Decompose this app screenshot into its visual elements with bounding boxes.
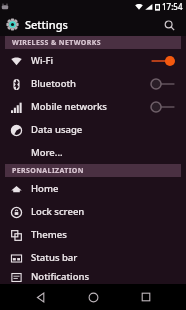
staticText: Status bar xyxy=(31,251,78,264)
staticText: Lock screen xyxy=(31,205,85,218)
button[interactable]: Status bar xyxy=(0,246,186,269)
button[interactable]: Back xyxy=(27,284,53,310)
button[interactable]: More... xyxy=(0,141,186,164)
staticText: Wi-Fi xyxy=(31,54,54,67)
button[interactable]: Toggle off xyxy=(150,77,176,91)
button[interactable]: Themes xyxy=(0,223,186,246)
button[interactable]: Home xyxy=(0,177,186,200)
staticText: Data usage xyxy=(31,123,83,136)
button[interactable]: Toggle off xyxy=(150,100,176,114)
button[interactable]: Bluetooth xyxy=(0,72,186,95)
button[interactable]: Notifications xyxy=(0,269,186,284)
staticText: Settings xyxy=(25,17,68,32)
staticText: 17:54 xyxy=(162,1,183,12)
staticText: WIRELESS & NETWORKS xyxy=(12,38,102,48)
button[interactable]: Wi-Fi xyxy=(0,49,186,72)
button[interactable]: Home xyxy=(80,284,106,310)
button[interactable]: Toggle on xyxy=(150,54,176,68)
staticText: Notifications xyxy=(31,270,90,283)
button[interactable]: Data usage xyxy=(0,118,186,141)
button[interactable]: Lock screen xyxy=(0,200,186,223)
staticText: PERSONALIZATION xyxy=(12,166,84,176)
staticText: Themes xyxy=(31,228,67,241)
button[interactable]: Mobile networks xyxy=(0,95,186,118)
staticText: Bluetooth xyxy=(31,77,77,90)
button[interactable]: Search xyxy=(158,14,180,36)
button[interactable]: Recent apps xyxy=(133,284,159,310)
staticText: Home xyxy=(31,182,59,195)
staticText: More... xyxy=(31,146,63,159)
staticText: Mobile networks xyxy=(31,100,107,113)
